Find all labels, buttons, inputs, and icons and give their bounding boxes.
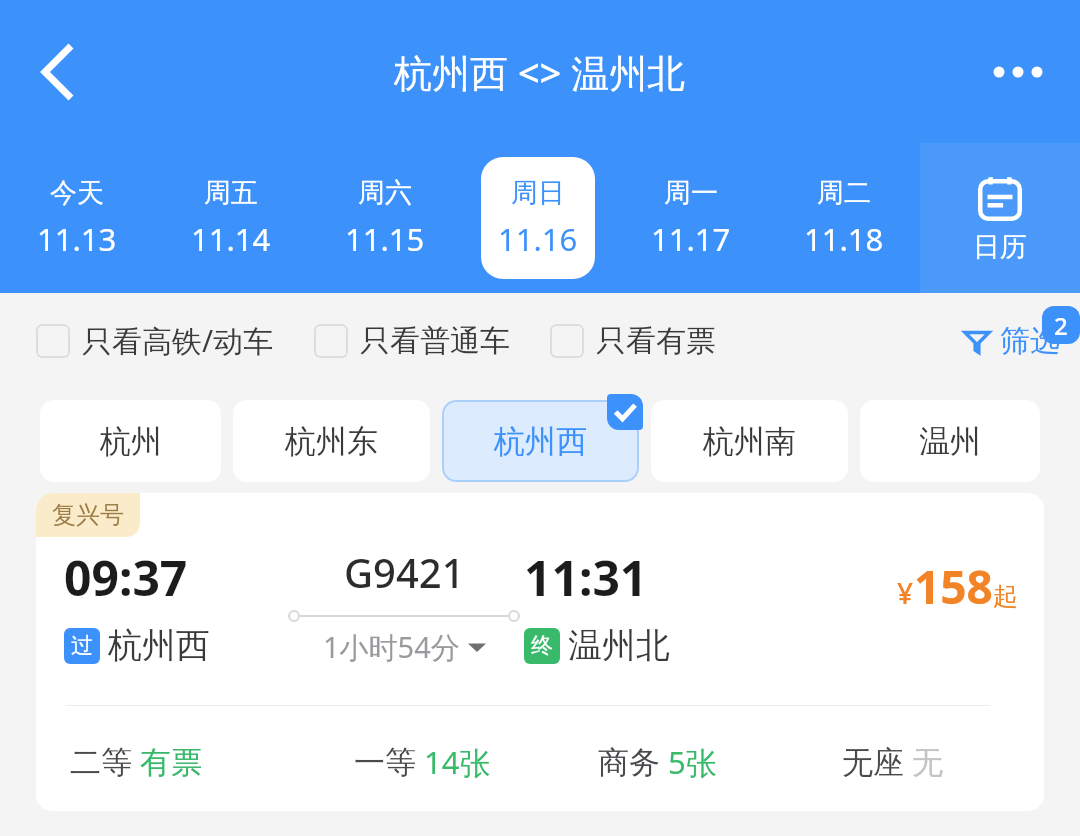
button[interactable]: 只看普通车 — [314, 322, 510, 360]
button[interactable]: 杭州 — [40, 400, 221, 482]
button[interactable]: 周一 — [614, 143, 767, 293]
staticText: 周六 — [358, 176, 412, 210]
staticText: 5张 — [668, 741, 717, 783]
staticText: 杭州西 <> 温州北 — [394, 46, 686, 98]
staticText: ¥ — [897, 574, 914, 612]
button[interactable]: 今天 — [0, 143, 154, 293]
staticText: 11.17 — [651, 218, 731, 260]
button[interactable]: 周五 — [154, 143, 308, 293]
staticText: 09:37 — [64, 545, 188, 610]
staticText: 杭州南 — [703, 422, 796, 461]
staticText: 温州北 — [568, 624, 670, 667]
staticText: 14张 — [424, 741, 491, 783]
button[interactable]: 杭州西 — [442, 400, 639, 482]
staticText: 终 — [531, 632, 553, 660]
button[interactable]: 只看有票 — [550, 322, 716, 360]
staticText: 杭州西 — [108, 624, 210, 667]
button[interactable]: Back — [18, 32, 98, 112]
staticText: 日历 — [973, 230, 1027, 264]
staticText: 无 — [912, 743, 943, 782]
staticText: 11:31 — [524, 545, 648, 610]
staticText: 杭州 — [100, 422, 162, 461]
staticText: 无座 — [842, 743, 904, 782]
button[interactable]: 筛选 — [962, 322, 1060, 360]
staticText: 周五 — [204, 176, 258, 210]
button[interactable]: 周日 — [461, 143, 614, 293]
staticText: 11.13 — [37, 218, 117, 260]
button[interactable]: 杭州东 — [233, 400, 430, 482]
button[interactable]: More options — [978, 32, 1058, 112]
button[interactable]: 温州 — [860, 400, 1040, 482]
staticText: 只看有票 — [596, 322, 716, 360]
staticText: 1小时54分 — [323, 627, 460, 667]
staticText: 二等 — [70, 743, 132, 782]
button[interactable]: 只看高铁/动车 — [36, 320, 274, 361]
button[interactable]: 周二 — [767, 143, 920, 293]
staticText: 158 — [914, 555, 993, 618]
staticText: 11.15 — [345, 218, 425, 260]
staticText: 只看高铁/动车 — [82, 320, 274, 361]
staticText: 温州 — [919, 422, 981, 461]
button[interactable]: 复兴号 — [36, 493, 1044, 811]
staticText: 11.18 — [804, 218, 884, 260]
staticText: 一等 — [354, 743, 416, 782]
button[interactable]: 杭州南 — [651, 400, 848, 482]
staticText: 今天 — [50, 176, 104, 210]
staticText: 周一 — [664, 176, 718, 210]
button[interactable]: 日历 — [920, 143, 1080, 293]
staticText: 只看普通车 — [360, 322, 510, 360]
staticText: 起 — [993, 581, 1018, 612]
staticText: 杭州东 — [285, 422, 378, 461]
staticText: 2 — [1054, 309, 1068, 342]
staticText: 杭州西 — [494, 422, 587, 461]
staticText: 复兴号 — [52, 500, 124, 530]
staticText: G9421 — [344, 545, 465, 599]
staticText: 11.16 — [498, 218, 578, 260]
staticText: 11.14 — [191, 218, 271, 260]
staticText: 过 — [71, 632, 93, 660]
staticText: 周二 — [817, 176, 871, 210]
staticText: 筛选 — [1000, 322, 1060, 360]
staticText: 周日 — [511, 176, 565, 210]
button[interactable]: 周六 — [308, 143, 461, 293]
staticText: 有票 — [140, 743, 202, 782]
staticText: 商务 — [598, 743, 660, 782]
